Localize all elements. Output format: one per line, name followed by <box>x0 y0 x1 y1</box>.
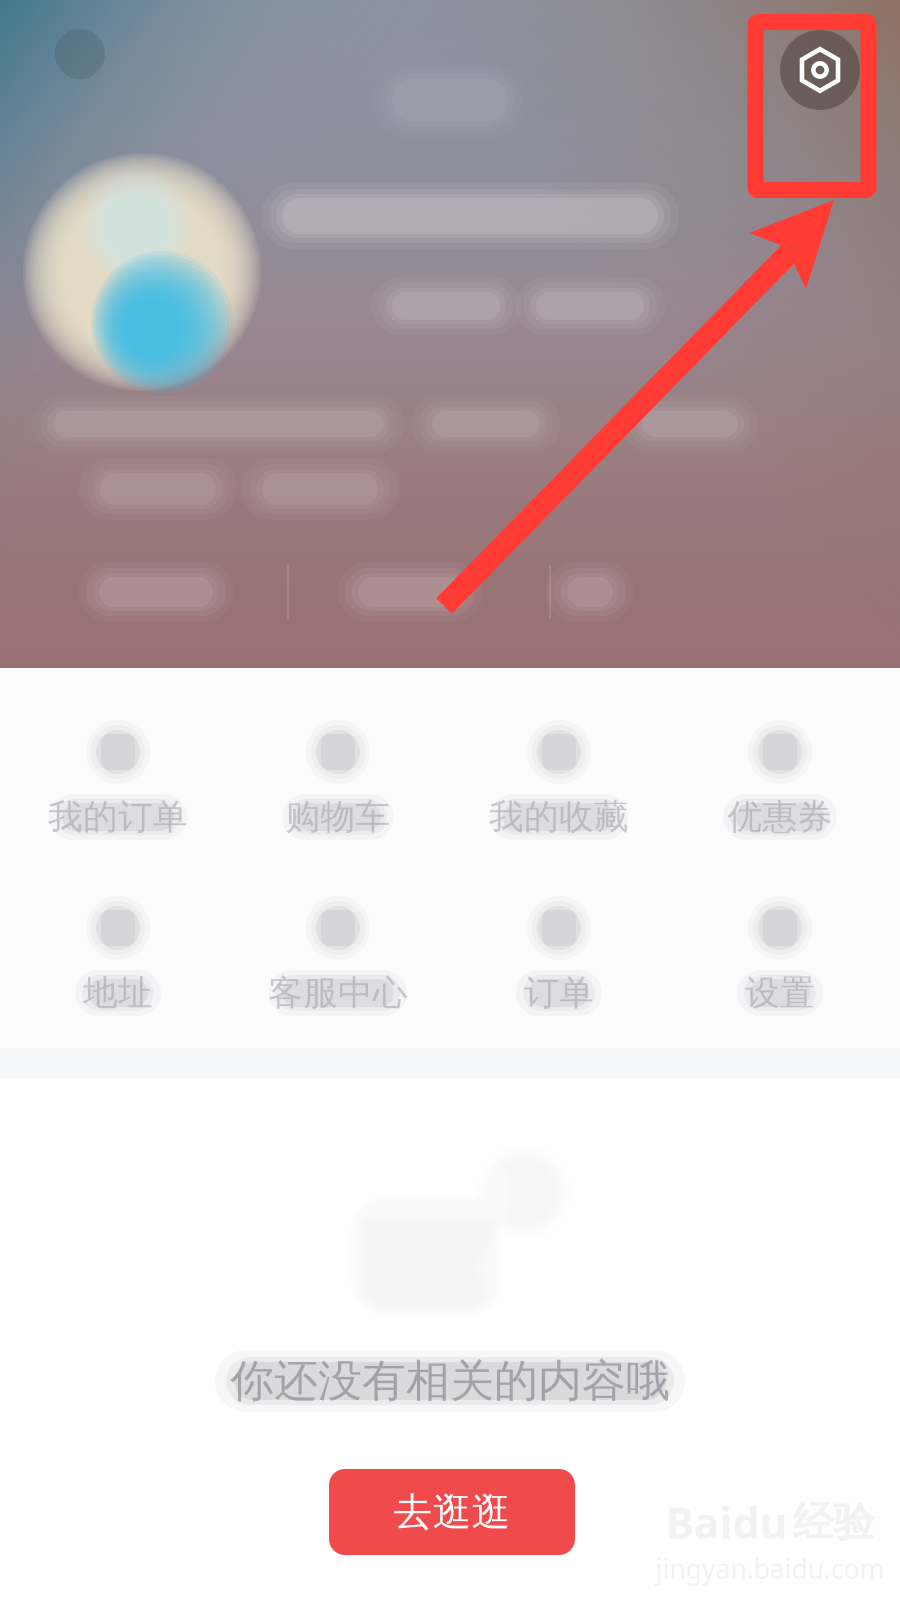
staticText: 经验 <box>792 1497 874 1548</box>
staticText: 订单 <box>524 972 594 1014</box>
staticText: 我的订单 <box>48 796 188 838</box>
button[interactable]: 我的订单 <box>11 715 225 865</box>
staticText: 客服中心 <box>268 972 408 1014</box>
staticText: 优惠券 <box>727 796 832 838</box>
staticText: 去逛逛 <box>393 1488 510 1536</box>
button[interactable]: Settings <box>765 15 875 125</box>
staticText: Baidu <box>665 1494 787 1551</box>
staticText: 你还没有相关的内容哦 <box>230 1354 670 1408</box>
staticText: 设置 <box>745 972 815 1014</box>
staticText: 我的收藏 <box>489 796 629 838</box>
staticText: 购物车 <box>285 796 390 838</box>
button[interactable]: 地址 <box>11 891 225 1041</box>
button[interactable]: 订单 <box>452 891 666 1041</box>
button[interactable]: 购物车 <box>231 715 445 865</box>
staticText: jingyan.baidu.com <box>655 1551 884 1586</box>
button[interactable]: Back <box>55 29 105 79</box>
button[interactable]: 去逛逛 <box>329 1469 575 1555</box>
button[interactable]: 设置 <box>673 891 887 1041</box>
button[interactable]: 优惠券 <box>673 715 887 865</box>
button[interactable]: 我的收藏 <box>452 715 666 865</box>
staticText: 地址 <box>83 972 153 1014</box>
button[interactable]: 客服中心 <box>231 891 445 1041</box>
